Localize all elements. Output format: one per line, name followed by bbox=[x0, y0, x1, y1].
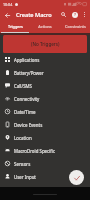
staticText: Location bbox=[14, 135, 32, 141]
button[interactable]: Date/Time bbox=[0, 105, 90, 118]
staticText: User Input bbox=[14, 174, 36, 180]
button[interactable]: User Input bbox=[0, 170, 90, 183]
staticText: Connectivity bbox=[14, 96, 40, 102]
staticText: Actions bbox=[38, 24, 52, 29]
staticText: ? bbox=[74, 12, 76, 18]
staticText: Constraints bbox=[65, 24, 86, 29]
staticText: Battery/Power bbox=[14, 70, 44, 76]
button[interactable]: Call/SMS bbox=[0, 79, 90, 92]
staticText: (No Triggers) bbox=[31, 41, 60, 47]
staticText: Triggers bbox=[8, 24, 23, 29]
button[interactable]: Applications bbox=[0, 53, 90, 66]
staticText: Sensors bbox=[14, 161, 31, 167]
staticText: Call/SMS bbox=[14, 83, 32, 89]
staticText: 10:04 bbox=[3, 2, 13, 7]
button[interactable]: (No Triggers) bbox=[3, 35, 87, 53]
staticText: Applications bbox=[14, 57, 40, 63]
button[interactable]: Device Events bbox=[0, 118, 90, 131]
button[interactable]: Help bbox=[69, 9, 80, 20]
button[interactable]: Location bbox=[0, 131, 90, 144]
button[interactable]: Constraints bbox=[60, 21, 90, 33]
button[interactable]: Search bbox=[58, 9, 69, 20]
staticText: Create Macro bbox=[16, 11, 52, 19]
button[interactable]: Back bbox=[2, 10, 12, 20]
button[interactable]: More options bbox=[80, 10, 89, 19]
button[interactable]: Connectivity bbox=[0, 92, 90, 105]
button[interactable]: Actions bbox=[30, 21, 60, 33]
staticText: Device Events bbox=[14, 122, 43, 128]
button[interactable]: Battery/Power bbox=[0, 66, 90, 79]
staticText: MacroDroid Specific bbox=[14, 148, 56, 154]
button[interactable]: Triggers bbox=[0, 21, 30, 33]
button[interactable]: Save macro bbox=[69, 170, 84, 185]
button[interactable]: Sensors bbox=[0, 157, 90, 170]
button[interactable]: MacroDroid Specific bbox=[0, 144, 90, 157]
staticText: Date/Time bbox=[14, 109, 36, 115]
